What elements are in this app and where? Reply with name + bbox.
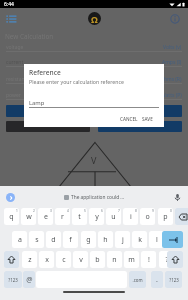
staticText: 0 (170, 209, 172, 213)
button[interactable]: q (4, 208, 19, 225)
staticText: SAVE (142, 116, 153, 122)
button[interactable]: resistance (0, 75, 188, 89)
button[interactable]: Enter (162, 231, 183, 248)
button[interactable]: Voice input (173, 193, 182, 202)
staticText: current (6, 59, 24, 66)
button[interactable]: x (39, 251, 54, 268)
staticText: v (79, 255, 83, 265)
staticText: 7 (118, 209, 120, 213)
button[interactable]: k (132, 231, 147, 248)
staticText: r (61, 212, 64, 222)
button[interactable]: c (56, 251, 71, 268)
button[interactable] (6, 121, 90, 132)
button[interactable]: Info (170, 14, 180, 24)
staticText: ! (148, 255, 150, 265)
button[interactable] (6, 105, 182, 117)
staticText: 3 (50, 209, 52, 213)
staticText: Lamp (29, 99, 45, 107)
button[interactable]: .com (129, 271, 146, 288)
staticText: 9 (152, 209, 154, 213)
button[interactable]: CANCEL (117, 113, 141, 125)
button[interactable]: . (151, 271, 163, 288)
button[interactable]: s (29, 231, 44, 248)
staticText: b (95, 255, 100, 265)
button[interactable]: m (124, 251, 139, 268)
staticText: .com (132, 277, 143, 283)
button[interactable]: i (123, 208, 138, 225)
staticText: @ (26, 275, 33, 285)
staticText: ? (165, 255, 169, 265)
staticText: CANCEL (120, 116, 138, 122)
staticText: c (62, 255, 66, 265)
button[interactable]: t (72, 208, 87, 225)
staticText: q (9, 212, 14, 222)
button[interactable]: @ (23, 271, 35, 288)
button[interactable]: The application could ... (64, 194, 125, 201)
staticText: j (122, 235, 124, 245)
staticText: z (28, 255, 32, 265)
staticText: Reference (29, 68, 61, 77)
staticText: Ohms (R) (160, 76, 182, 83)
staticText: New Calculation (5, 32, 54, 41)
staticText: l (156, 235, 158, 245)
button[interactable]: e (38, 208, 53, 225)
button[interactable]: j (115, 231, 130, 248)
staticText: y (95, 212, 99, 222)
staticText: Volts (v) (163, 44, 182, 51)
staticText: 2 (33, 209, 35, 213)
button[interactable]: Shift (167, 251, 183, 268)
staticText: h (103, 235, 108, 245)
staticText: e (44, 212, 48, 222)
staticText: ?123 (8, 277, 18, 283)
staticText: s (35, 235, 39, 245)
button[interactable]: ! (141, 251, 156, 268)
button[interactable]: r (55, 208, 70, 225)
staticText: f (69, 235, 72, 245)
button[interactable]: l (149, 231, 164, 248)
button[interactable]: Shift (4, 251, 19, 268)
button[interactable]: n (107, 251, 122, 268)
button[interactable]: voltage (0, 43, 188, 57)
button[interactable]: y (89, 208, 104, 225)
button[interactable]: d (46, 231, 61, 248)
staticText: The application could ... (71, 194, 125, 201)
staticText: a (18, 235, 22, 245)
staticText: t (78, 212, 81, 222)
button[interactable]: Backspace (175, 208, 188, 225)
staticText: 6 (101, 209, 103, 213)
button[interactable]: a (12, 231, 27, 248)
button[interactable]: current (0, 58, 188, 72)
button[interactable]: v (73, 251, 88, 268)
button[interactable]: h (98, 231, 113, 248)
staticText: Ω (91, 13, 98, 25)
staticText: Amps (I) (162, 59, 182, 66)
staticText: Please enter your calculation reference (29, 78, 124, 85)
staticText: resistance (6, 76, 30, 83)
button[interactable]: u (106, 208, 121, 225)
button[interactable]: p (158, 208, 173, 225)
button[interactable]: g (81, 231, 96, 248)
button[interactable]: b (90, 251, 105, 268)
button[interactable]: power (0, 91, 188, 105)
staticText: Watts (P) (161, 92, 182, 99)
button[interactable]: w (21, 208, 36, 225)
button[interactable]: z (22, 251, 37, 268)
staticText: i (130, 212, 132, 222)
staticText: power (6, 92, 21, 99)
staticText: w (26, 212, 32, 222)
button[interactable]: ? (159, 251, 174, 268)
staticText: 6:44 (4, 1, 14, 8)
button[interactable]: ?123 (165, 271, 182, 288)
button[interactable] (98, 121, 182, 132)
staticText: V (91, 154, 97, 166)
button[interactable]: SAVE (139, 113, 156, 125)
button[interactable]: More suggestions (6, 193, 15, 202)
button[interactable]: Menu (5, 12, 18, 25)
staticText: 1 (16, 209, 18, 213)
staticText: x (45, 255, 49, 265)
button[interactable]: f (63, 231, 78, 248)
staticText: . (156, 275, 158, 285)
button[interactable]: o (140, 208, 155, 225)
button[interactable]: ?123 (4, 271, 22, 288)
